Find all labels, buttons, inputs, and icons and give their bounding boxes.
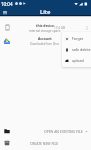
staticText: CREATE NEW FILE bbox=[30, 141, 59, 146]
button[interactable]: CREATE NEW FILE bbox=[0, 137, 91, 149]
staticText: this device bbox=[36, 23, 55, 28]
staticText: 17.4 GB free bbox=[54, 26, 70, 30]
staticText: 10:04 bbox=[1, 1, 13, 7]
staticText: internal storage space bbox=[29, 29, 61, 33]
staticText: Forget bbox=[72, 36, 84, 41]
button[interactable]: More options bbox=[83, 24, 91, 32]
button[interactable]: Account bbox=[0, 34, 91, 48]
staticText: OPEN AN EXISTING FILE bbox=[44, 129, 83, 134]
staticText: Downloaded from Drive bbox=[30, 42, 60, 46]
staticText: safe delete bbox=[72, 47, 91, 52]
staticText: upload bbox=[72, 58, 84, 63]
staticText: Lite bbox=[40, 8, 51, 16]
button[interactable]: upload bbox=[62, 55, 91, 66]
staticText: Account bbox=[38, 36, 52, 41]
button[interactable]: Navigation menu bbox=[1, 8, 9, 16]
button[interactable]: safe delete bbox=[62, 44, 91, 55]
button[interactable]: this device bbox=[0, 21, 91, 34]
button[interactable]: Forget bbox=[62, 33, 91, 44]
button[interactable]: OPEN AN EXISTING FILE bbox=[0, 125, 91, 137]
